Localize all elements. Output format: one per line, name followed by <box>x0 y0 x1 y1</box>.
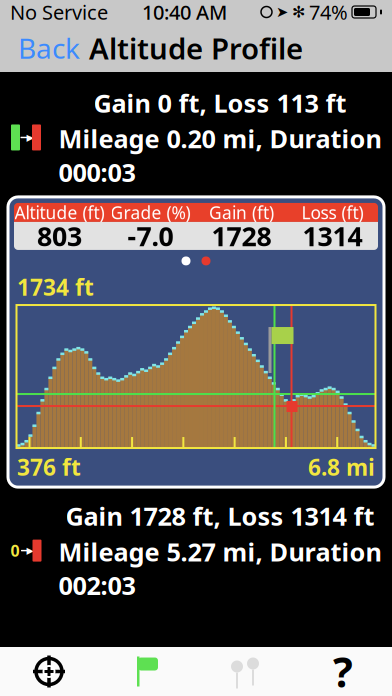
staticText: Gain (ft) <box>209 201 274 224</box>
staticText: Grade (%) <box>110 201 190 224</box>
staticText: -7.0 <box>127 218 173 254</box>
staticText: ➤ <box>276 4 288 20</box>
staticText: 74% <box>309 0 348 25</box>
staticText: 376 ft <box>17 452 81 482</box>
staticText: ✻ <box>292 3 305 21</box>
staticText: 1728 <box>211 218 271 254</box>
button[interactable]: Center on location <box>0 647 98 696</box>
staticText: 803 <box>37 218 82 254</box>
staticText: Gain 0 ft, Loss 113 ft <box>93 86 346 120</box>
button[interactable]: Back <box>0 24 98 72</box>
staticText: 10:40 AM <box>142 0 227 25</box>
staticText: Mileage 0.20 mi, Duration 000:03 <box>58 122 381 189</box>
staticText: Gain 1728 ft, Loss 1314 ft <box>65 499 374 533</box>
staticText: ? <box>333 644 353 696</box>
staticText: 1734 ft <box>17 272 94 302</box>
staticText: Back <box>18 29 80 67</box>
staticText: Loss (ft) <box>301 201 363 224</box>
button[interactable]: Waypoints <box>98 647 196 696</box>
staticText: Altitude (ft) <box>14 201 104 224</box>
staticText: Mileage 5.27 mi, Duration 002:03 <box>58 535 381 602</box>
button[interactable]: Markers <box>196 647 294 696</box>
staticText: 1314 <box>302 218 362 254</box>
staticText: No Service <box>10 0 108 25</box>
staticText: Altitude Profile <box>89 28 303 67</box>
staticText: 0 <box>10 540 19 561</box>
staticText: 6.8 mi <box>308 452 375 482</box>
staticText: ▶ <box>26 545 33 556</box>
button[interactable]: Help <box>294 647 392 696</box>
staticText: ▶ <box>26 132 33 143</box>
